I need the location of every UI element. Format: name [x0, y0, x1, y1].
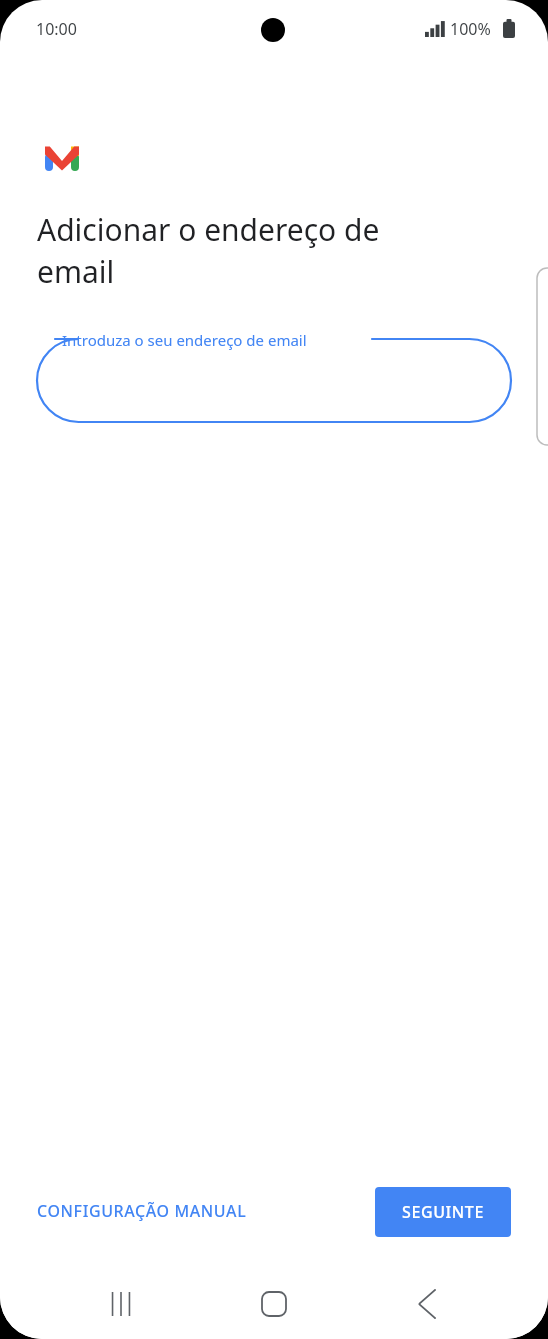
button[interactable]: Introduza o seu endereço de email [0, 317, 548, 417]
staticText: Adicionar o endereço de email [37, 209, 380, 292]
staticText: CONFIGURAÇÃO MANUAL [37, 1200, 247, 1222]
staticText: Introduza o seu endereço de email [62, 330, 307, 350]
button[interactable]: Home [244, 1274, 304, 1334]
staticText: SEGUINTE [402, 1201, 484, 1223]
button[interactable]: Back [397, 1274, 457, 1334]
staticText: 100% [450, 18, 491, 40]
button[interactable]: SEGUINTE [375, 1187, 511, 1237]
button[interactable]: CONFIGURAÇÃO MANUAL [25, 1188, 259, 1234]
button[interactable]: Recent apps [91, 1274, 151, 1334]
staticText: 10:00 [36, 18, 77, 40]
